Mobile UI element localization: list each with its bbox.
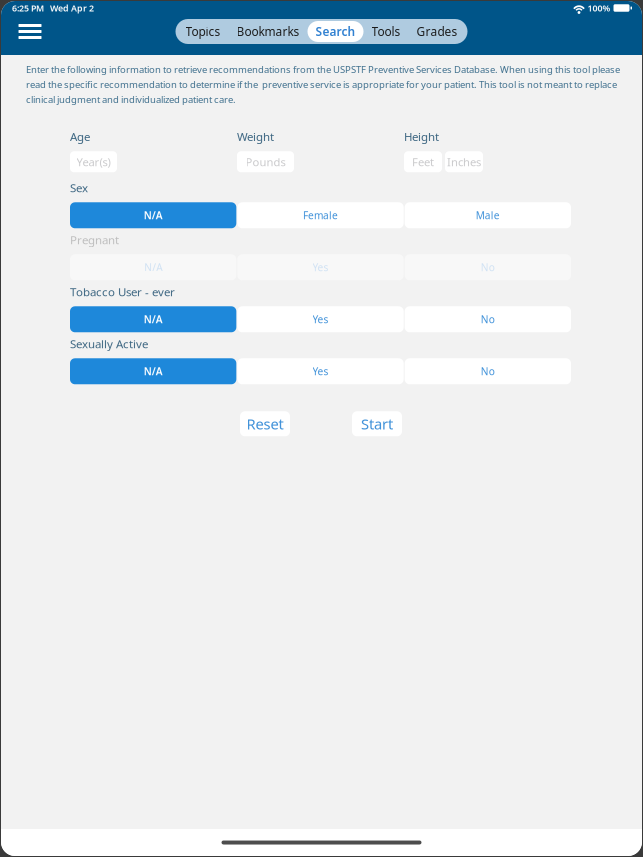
button[interactable]: N/A <box>70 358 236 384</box>
button[interactable]: No <box>405 358 571 384</box>
staticText: Tobacco User - ever <box>70 284 175 300</box>
staticText: Topics <box>185 23 220 40</box>
staticText: Start <box>361 414 393 434</box>
staticText: Weight <box>237 129 274 144</box>
button[interactable]: Year(s) <box>70 151 117 172</box>
staticText: Sex <box>70 180 88 196</box>
staticText: Feet <box>412 154 434 169</box>
staticText: Enter the following information to retri… <box>26 63 620 76</box>
button[interactable]: Bookmarks <box>228 21 307 42</box>
button[interactable]: Female <box>237 202 404 228</box>
button[interactable]: Search <box>307 21 363 42</box>
button[interactable]: N/A <box>70 306 236 332</box>
staticText: Male <box>476 208 500 222</box>
button[interactable]: Pounds <box>237 151 294 172</box>
staticText: Age <box>70 129 90 144</box>
staticText: 100% <box>587 2 610 14</box>
button[interactable]: Yes <box>237 306 404 332</box>
button[interactable]: Inches <box>445 151 483 172</box>
staticText: Reset <box>246 414 283 434</box>
button[interactable]: Feet <box>404 151 442 172</box>
staticText: Yes <box>312 364 328 378</box>
staticText: Pounds <box>245 154 285 169</box>
staticText: Female <box>303 208 338 222</box>
staticText: Year(s) <box>76 154 110 169</box>
staticText: Yes <box>312 260 328 274</box>
button[interactable]: N/A <box>70 202 236 228</box>
staticText: N/A <box>144 364 163 378</box>
staticText: No <box>481 364 495 378</box>
staticText: N/A <box>144 260 162 274</box>
button[interactable]: Start <box>352 411 402 436</box>
staticText: N/A <box>144 312 163 326</box>
staticText: Bookmarks <box>236 23 299 40</box>
staticText: Search <box>315 23 355 40</box>
button[interactable]: No <box>405 306 571 332</box>
staticText: Grades <box>416 23 457 40</box>
staticText: Yes <box>312 312 328 326</box>
staticText: Inches <box>447 154 481 169</box>
button[interactable]: Grades <box>408 21 465 42</box>
button[interactable]: N/A <box>70 254 236 280</box>
button[interactable]: Yes <box>237 358 404 384</box>
button[interactable]: Menu <box>10 15 50 47</box>
staticText: read the specific recommendation to dete… <box>26 78 617 91</box>
staticText: Wed Apr 2 <box>44 2 94 14</box>
staticText: Height <box>404 129 439 144</box>
button[interactable]: Topics <box>177 21 228 42</box>
button[interactable]: Tools <box>363 21 408 42</box>
staticText: clinical judgment and individualized pat… <box>26 93 236 106</box>
button[interactable]: Reset <box>240 411 290 436</box>
staticText: N/A <box>144 208 163 222</box>
staticText: Tools <box>371 23 400 40</box>
button[interactable]: Male <box>405 202 571 228</box>
staticText: 6:25 PM <box>12 2 44 14</box>
staticText: No <box>481 312 495 326</box>
staticText: Sexually Active <box>70 336 148 352</box>
staticText: No <box>481 260 495 274</box>
staticText: Pregnant <box>70 232 119 248</box>
